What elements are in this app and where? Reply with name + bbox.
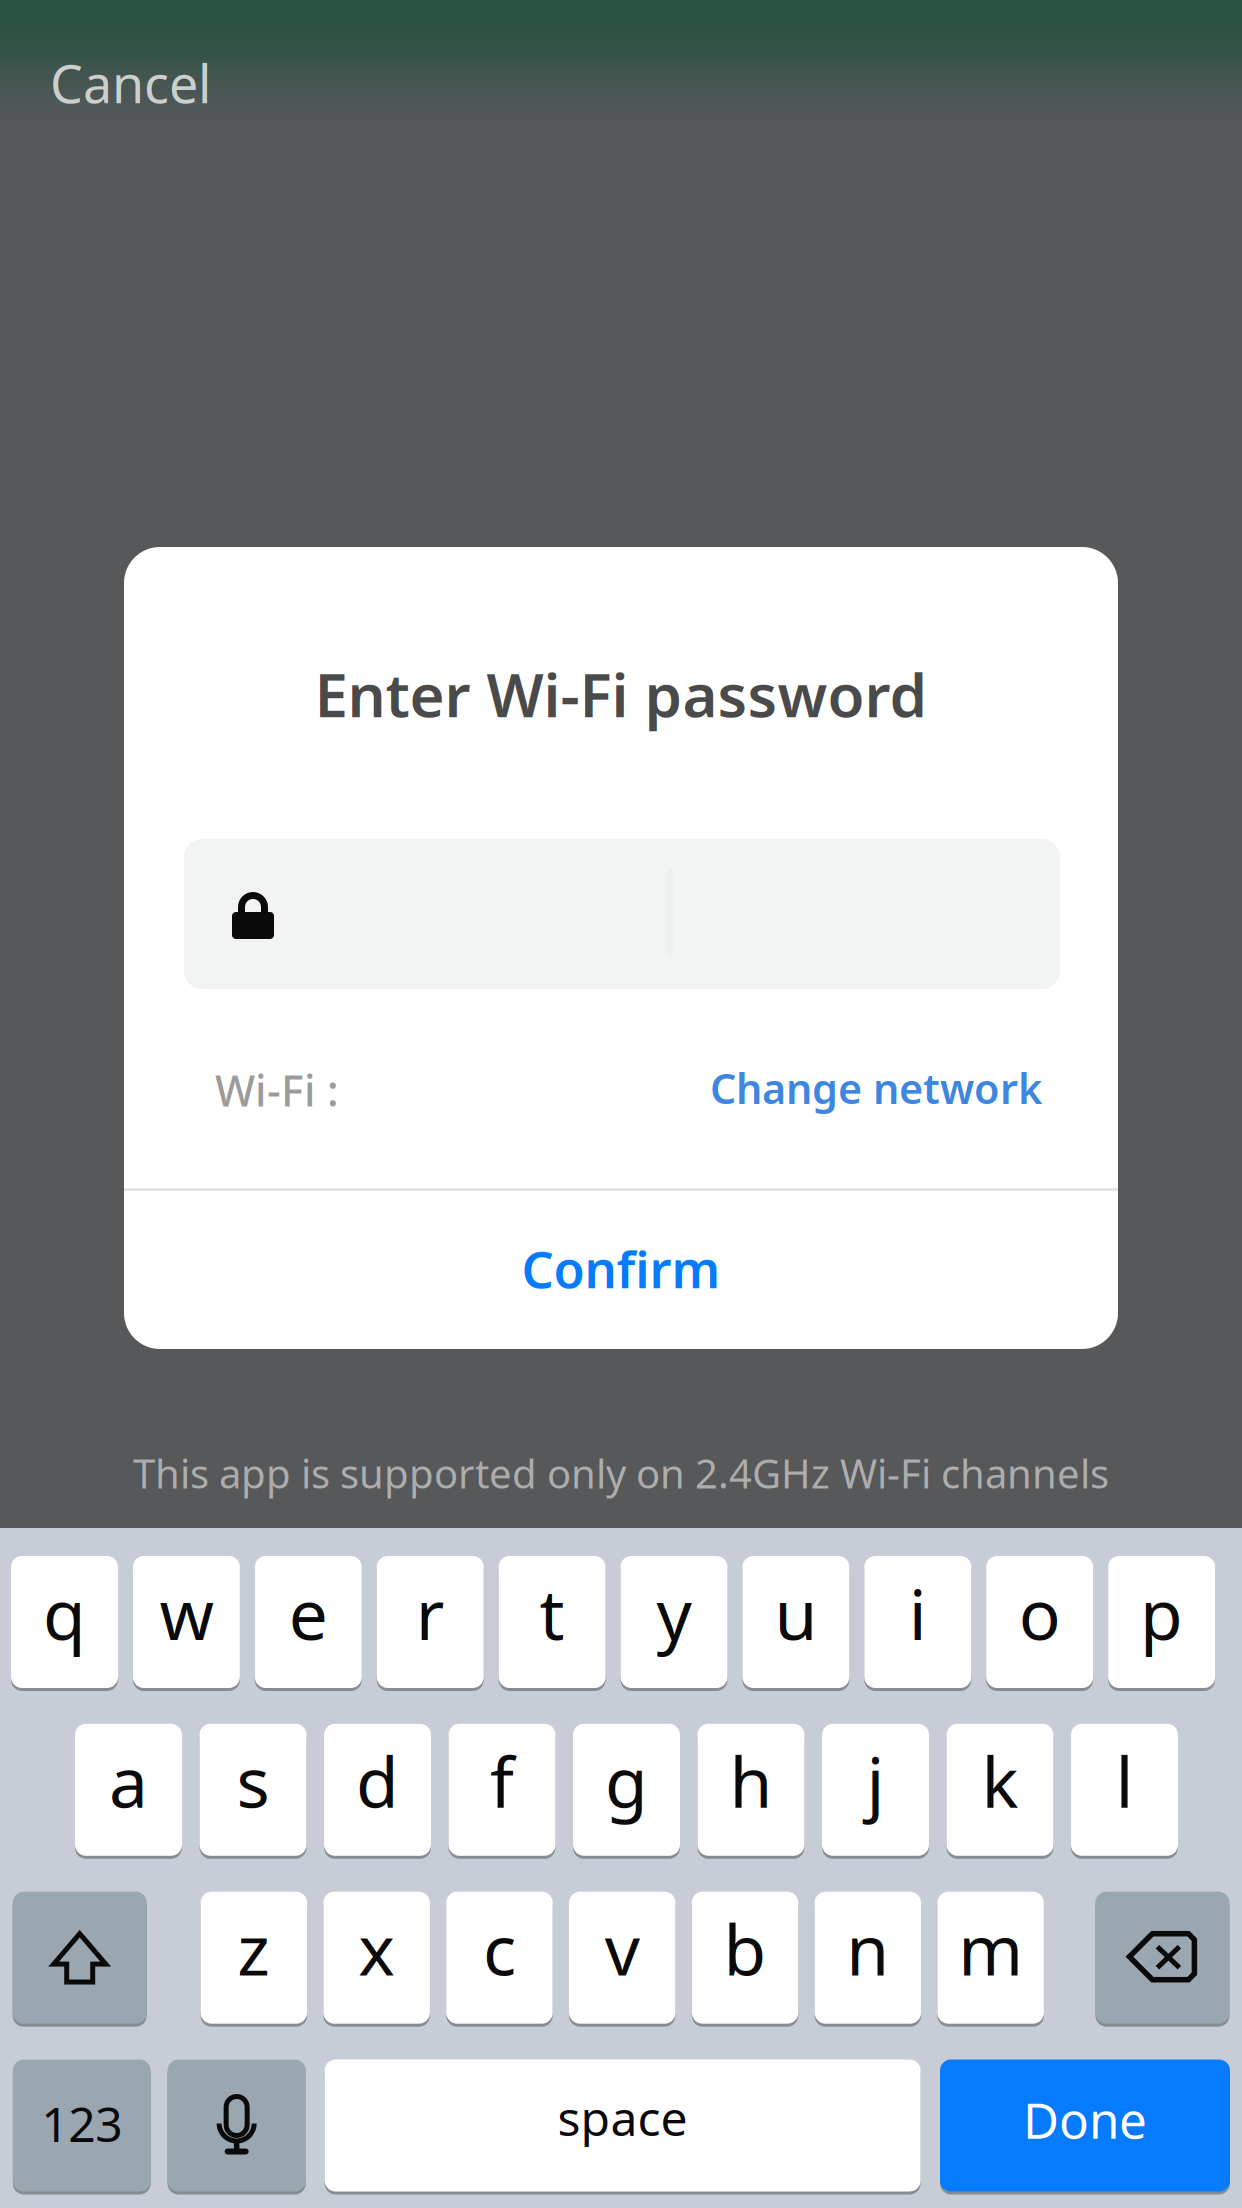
staticText: space	[558, 2086, 688, 2149]
staticText: d	[356, 1735, 399, 1827]
button[interactable]: Cancel	[50, 45, 290, 121]
staticText: s	[236, 1735, 269, 1827]
button[interactable]: 123	[13, 2057, 151, 2193]
staticText: i	[909, 1567, 927, 1659]
button[interactable]: t	[499, 1554, 606, 1690]
button[interactable]: a	[75, 1722, 182, 1858]
button[interactable]: j	[822, 1722, 929, 1858]
button[interactable]: h	[697, 1722, 804, 1858]
staticText: Confirm	[521, 1235, 720, 1302]
staticText: f	[490, 1735, 514, 1827]
button[interactable]: b	[692, 1890, 798, 2026]
button[interactable]: p	[1108, 1554, 1215, 1690]
staticText: j	[866, 1735, 884, 1827]
staticText: 123	[41, 2092, 122, 2155]
button[interactable]: l	[1071, 1722, 1178, 1858]
staticText: o	[1019, 1567, 1061, 1659]
button[interactable]: f	[448, 1722, 555, 1858]
staticText: v	[605, 1903, 640, 1995]
staticText: Cancel	[50, 48, 211, 118]
button[interactable]: Done	[940, 2057, 1230, 2193]
button[interactable]: Confirm	[124, 1189, 1118, 1348]
staticText: c	[483, 1903, 516, 1995]
staticText: x	[358, 1903, 395, 1995]
staticText: b	[723, 1903, 766, 1995]
staticText: u	[774, 1567, 817, 1659]
button[interactable]: e	[255, 1554, 362, 1690]
staticText: Wi-Fi :	[215, 1062, 339, 1118]
staticText: n	[846, 1903, 889, 1995]
button[interactable]: g	[573, 1722, 680, 1858]
staticText: Done	[1023, 2087, 1147, 2152]
staticText: Change network	[710, 1061, 1042, 1115]
staticText: l	[1115, 1735, 1133, 1827]
button[interactable]: Change network	[642, 1053, 1042, 1123]
button[interactable]: o	[986, 1554, 1093, 1690]
staticText: h	[729, 1735, 772, 1827]
staticText: y	[656, 1567, 691, 1659]
button[interactable]: z	[201, 1890, 307, 2026]
button[interactable]: m	[937, 1890, 1044, 2026]
staticText: a	[109, 1735, 148, 1827]
button[interactable]: u	[742, 1554, 849, 1690]
button[interactable]: x	[323, 1890, 430, 2026]
staticText: q	[43, 1567, 86, 1659]
button[interactable]: d	[324, 1722, 431, 1858]
staticText: k	[981, 1735, 1018, 1827]
button[interactable]: space	[325, 2057, 921, 2193]
button[interactable]: s	[199, 1722, 306, 1858]
button[interactable]: i	[864, 1554, 971, 1690]
button[interactable]: n	[815, 1890, 921, 2026]
staticText: t	[540, 1567, 565, 1659]
button[interactable]: r	[377, 1554, 484, 1690]
button[interactable]: y	[620, 1554, 727, 1690]
staticText: z	[237, 1903, 270, 1995]
button[interactable]: w	[133, 1554, 240, 1690]
button[interactable]: Delete	[1095, 1890, 1229, 2026]
button[interactable]: k	[946, 1722, 1053, 1858]
button[interactable]: v	[569, 1890, 675, 2026]
staticText: e	[289, 1567, 328, 1659]
staticText: m	[958, 1903, 1023, 1995]
button[interactable]: q	[11, 1554, 118, 1690]
staticText: Enter Wi-Fi password	[314, 654, 927, 734]
button[interactable]: Dictation	[167, 2057, 306, 2193]
staticText: r	[416, 1567, 445, 1659]
staticText: w	[159, 1567, 213, 1659]
staticText: g	[605, 1735, 648, 1827]
staticText: This app is supported only on 2.4GHz Wi-…	[133, 1446, 1109, 1499]
button[interactable]: c	[446, 1890, 553, 2026]
button[interactable]: Shift	[13, 1890, 147, 2026]
staticText: p	[1140, 1567, 1183, 1659]
